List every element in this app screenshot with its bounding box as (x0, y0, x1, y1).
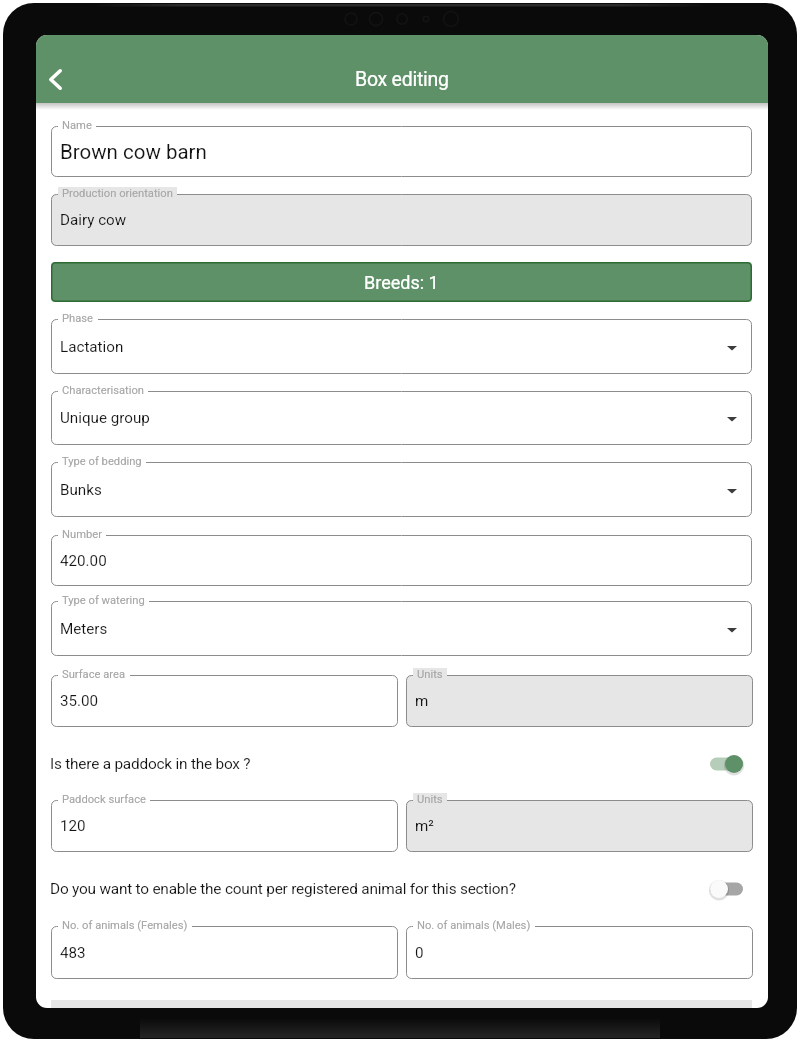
staticText: Number (62, 528, 102, 541)
staticText: Production orientation (62, 187, 173, 200)
staticText: Paddock surface (62, 793, 146, 806)
staticText: Name (62, 119, 92, 132)
staticText: Phase (62, 312, 94, 325)
staticText: Brown cow barn (60, 140, 207, 164)
button[interactable]: Type of bedding (51, 453, 752, 518)
staticText: Type of watering (62, 594, 145, 607)
staticText: 35.00 (60, 692, 99, 710)
staticText: Lactation (60, 338, 124, 356)
button[interactable]: Disabled (699, 869, 751, 909)
staticText: m (415, 692, 429, 710)
button[interactable]: Characterisation (51, 382, 752, 446)
button[interactable]: Units (406, 791, 753, 853)
staticText: Type of bedding (62, 455, 142, 468)
staticText: Is there a paddock in the box ? (50, 755, 699, 773)
button[interactable]: Surface area (51, 666, 398, 728)
staticText: Dairy cow (60, 211, 127, 229)
button[interactable]: No. of animals (Females) (51, 917, 398, 980)
button[interactable]: No. of animals (Males) (406, 917, 753, 980)
button[interactable]: Back (36, 55, 79, 103)
button[interactable]: Units (406, 666, 753, 728)
staticText: Unique group (60, 409, 150, 427)
button[interactable]: Phase (51, 310, 752, 375)
button[interactable]: Production orientation (51, 185, 752, 247)
button[interactable]: Breeds: 1 (51, 262, 752, 302)
staticText: 0 (415, 944, 424, 962)
button[interactable]: Number (51, 526, 752, 587)
staticText: 483 (60, 944, 86, 962)
button[interactable]: Enabled (699, 744, 751, 784)
staticText: No. of animals (Females) (62, 919, 188, 932)
staticText: 120 (60, 817, 86, 835)
button[interactable]: Paddock surface (51, 791, 398, 853)
staticText: Bunks (60, 481, 102, 499)
button[interactable]: Type of watering (51, 592, 752, 657)
staticText: Surface area (62, 668, 126, 681)
staticText: Units (417, 668, 443, 681)
staticText: m² (415, 817, 434, 835)
staticText: Box editing (355, 68, 449, 91)
staticText: No. of animals (Males) (417, 919, 531, 932)
staticText: Meters (60, 620, 108, 638)
staticText: 420.00 (60, 552, 107, 570)
staticText: Breeds: 1 (364, 272, 439, 293)
button[interactable]: Name (51, 117, 752, 178)
staticText: Do you want to enable the count per regi… (50, 880, 699, 898)
staticText: Characterisation (62, 384, 144, 397)
staticText: Units (417, 793, 443, 806)
